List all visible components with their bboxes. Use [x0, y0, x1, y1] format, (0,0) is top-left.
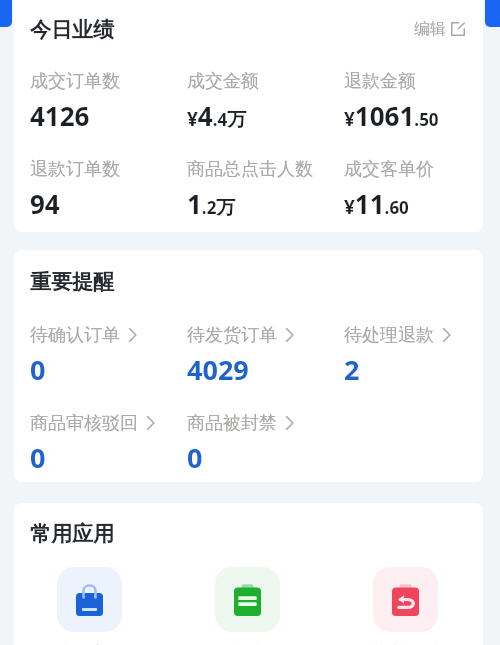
button[interactable] [24, 64, 174, 122]
button[interactable]: 退款管理 [373, 567, 438, 632]
staticText: 成交订单数 [30, 70, 120, 93]
staticText: ¥11.60 [344, 186, 409, 221]
button[interactable]: 待发货订单 [182, 318, 299, 353]
button[interactable]: 商品被封禁 [182, 406, 299, 441]
button[interactable]: 商品管理 [57, 567, 122, 632]
staticText: 0 [187, 439, 203, 476]
button[interactable] [181, 152, 331, 210]
staticText: 4126 [30, 98, 90, 133]
button[interactable]: 商品审核驳回 [25, 406, 160, 441]
button[interactable]: 待处理退款 [339, 318, 456, 353]
staticText: 今日业绩 [30, 17, 114, 43]
button[interactable] [338, 152, 488, 210]
staticText: 94 [30, 186, 60, 221]
staticText: 发布商品 [58, 643, 122, 645]
button[interactable]: 订单管理 [215, 567, 280, 632]
staticText: 退款金额 [344, 70, 416, 93]
button[interactable]: 编辑 [410, 15, 469, 43]
staticText: ¥4.4万 [187, 98, 247, 133]
staticText: 待确认订单 [30, 324, 120, 347]
staticText: 退款订单数 [30, 158, 120, 181]
staticText: 商品被封禁 [187, 412, 277, 435]
button[interactable] [338, 64, 488, 122]
staticText: 成交客单价 [344, 158, 434, 181]
staticText: 0 [30, 439, 46, 476]
staticText: 1.2万 [187, 186, 236, 221]
button[interactable]: 待确认订单 [25, 318, 142, 353]
staticText: 待处理退款 [344, 324, 434, 347]
staticText: 重要提醒 [30, 269, 114, 295]
staticText: 待发货订单 [187, 324, 277, 347]
staticText: 成交金额 [187, 70, 259, 93]
staticText: 常用应用 [30, 521, 114, 547]
staticText: 2 [344, 351, 360, 388]
staticText: 编辑 [414, 19, 446, 39]
button[interactable] [24, 152, 174, 210]
button[interactable] [181, 64, 331, 122]
staticText: ¥1061.50 [344, 98, 439, 133]
staticText: 商品总点击人数 [187, 158, 313, 181]
staticText: 0 [30, 351, 46, 388]
staticText: 商品审核驳回 [30, 412, 138, 435]
staticText: 4029 [187, 351, 249, 388]
